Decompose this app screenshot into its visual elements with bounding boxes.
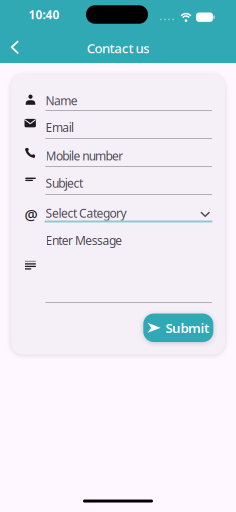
button[interactable]: @ bbox=[11, 199, 225, 227]
staticText: Name bbox=[45, 92, 78, 108]
staticText: Mobile number bbox=[45, 148, 123, 164]
staticText: Submit bbox=[166, 319, 209, 337]
staticText: Contact us bbox=[87, 39, 149, 57]
button[interactable]: Back bbox=[4, 33, 26, 61]
staticText: Select Category bbox=[45, 205, 126, 221]
staticText: 10:40 bbox=[28, 6, 59, 22]
staticText: Enter Message bbox=[45, 232, 122, 248]
staticText: @ bbox=[24, 204, 37, 224]
staticText: Email bbox=[45, 119, 74, 135]
button[interactable]: Submit bbox=[143, 314, 213, 342]
staticText: Subject bbox=[45, 175, 83, 191]
